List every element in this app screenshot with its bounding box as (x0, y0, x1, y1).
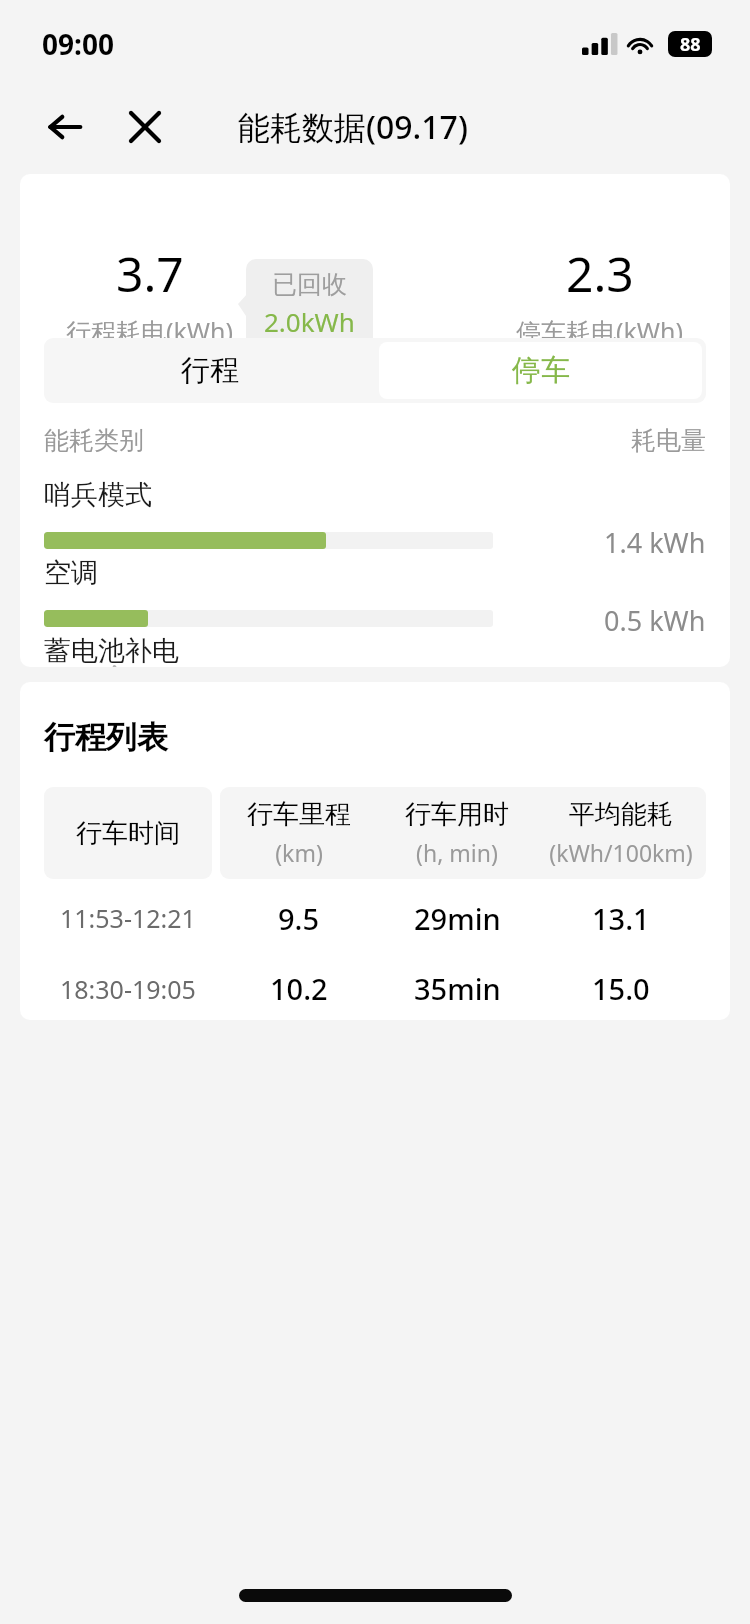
staticText: 9.5 (278, 899, 320, 938)
staticText: 2.3 (566, 241, 634, 306)
button[interactable]: 行程 (44, 338, 375, 403)
staticText: 13.1 (592, 899, 650, 938)
staticText: 0.5 kWh (604, 602, 706, 634)
staticText: 88 (680, 32, 701, 57)
staticText: 哨兵模式 (44, 478, 152, 512)
staticText: (km) (275, 837, 323, 868)
staticText: 能耗类别 (44, 425, 144, 456)
staticText: 耗电量 (631, 425, 706, 456)
staticText: (h, min) (416, 837, 498, 868)
staticText: 18:30-19:05 (60, 972, 196, 1006)
staticText: 3.7 (116, 241, 184, 306)
staticText: 行车用时 (405, 798, 509, 831)
staticText: 能耗数据(09.17) (238, 105, 468, 149)
staticText: 平均能耗 (569, 798, 673, 831)
staticText: 行程 (181, 352, 239, 389)
staticText: 10.2 (270, 969, 328, 1008)
staticText: 行程列表 (44, 718, 168, 757)
staticText: (kWh/100km) (549, 837, 693, 868)
staticText: 空调 (44, 556, 98, 590)
staticText: 已回收 (272, 269, 347, 300)
staticText: 停车耗电(kWh) (516, 314, 684, 338)
button[interactable]: Close (122, 104, 168, 150)
staticText: 2.0kWh (264, 304, 355, 339)
staticText: 35min (414, 969, 501, 1008)
button[interactable]: 11:53-12:21 (44, 879, 706, 957)
button[interactable]: 停车 (379, 342, 702, 399)
staticText: 行程耗电(kWh) (66, 314, 234, 338)
staticText: 行车时间 (76, 817, 180, 850)
staticText: 停车 (512, 352, 570, 389)
staticText: 行车里程 (247, 798, 351, 831)
button[interactable]: Back (42, 104, 88, 150)
staticText: 09:00 (42, 25, 114, 63)
staticText: 11:53-12:21 (60, 901, 196, 935)
staticText: 蓄电池补电 (44, 634, 179, 667)
staticText: 1.4 kWh (604, 524, 706, 556)
staticText: 29min (414, 899, 501, 938)
staticText: 15.0 (592, 969, 650, 1008)
button[interactable]: 18:30-19:05 (44, 957, 706, 1020)
